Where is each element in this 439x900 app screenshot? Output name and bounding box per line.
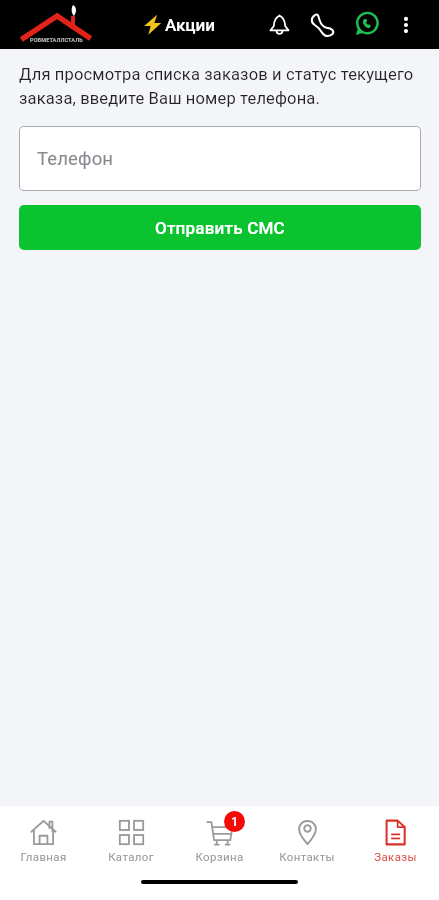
button[interactable]: Заказы (351, 806, 439, 867)
button[interactable]: 1 (175, 806, 263, 867)
staticText: 1 (231, 814, 239, 829)
staticText: Телефон (37, 148, 114, 170)
staticText: Главная (20, 850, 67, 863)
button[interactable]: More options (385, 0, 427, 49)
button[interactable]: Телефон (19, 126, 421, 191)
button[interactable]: WhatsApp (345, 0, 387, 49)
button[interactable]: Notifications (258, 0, 300, 49)
staticText: Контакты (279, 850, 335, 863)
staticText: Корзина (195, 850, 244, 863)
staticText: Для просмотра списка заказов и статус те… (19, 65, 414, 108)
button[interactable]: Главная (0, 806, 87, 867)
staticText: Заказы (374, 850, 417, 863)
button[interactable]: Call (301, 0, 343, 49)
button[interactable]: Каталог (87, 806, 175, 867)
button[interactable]: Отправить СМС (19, 205, 421, 250)
staticText: Отправить СМС (155, 218, 285, 238)
staticText: РОВМЕТАЛЛСТАЛЬ (30, 37, 83, 44)
staticText: Каталог (108, 850, 154, 863)
button[interactable]: Контакты (263, 806, 351, 867)
button[interactable]: Logo (21, 4, 91, 44)
button[interactable]: Акции (143, 14, 216, 35)
staticText: Акции (165, 15, 216, 35)
